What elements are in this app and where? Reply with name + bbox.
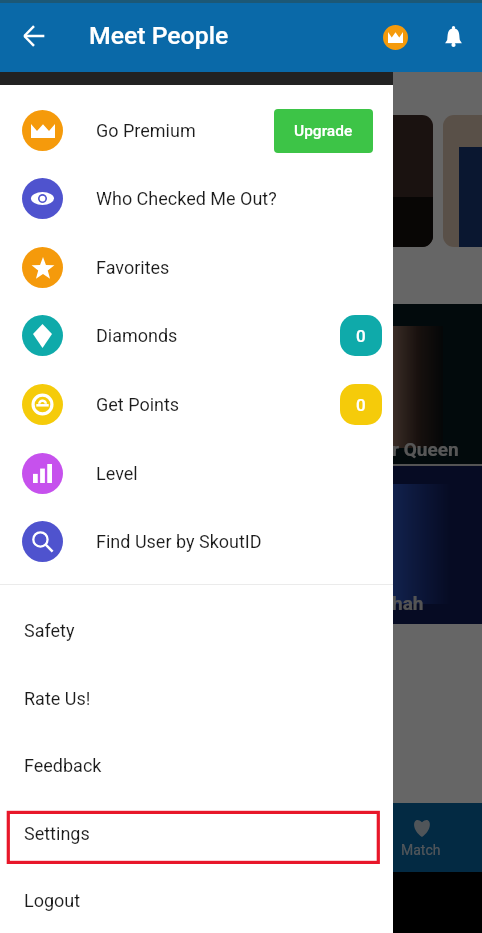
staticText: Diamonds bbox=[96, 325, 178, 346]
staticText: Logout bbox=[24, 890, 81, 911]
button[interactable]: Who Checked Me Out? bbox=[0, 164, 393, 233]
button[interactable]: Rate Us! bbox=[0, 664, 393, 732]
staticText: Level bbox=[96, 463, 138, 484]
staticText: Find User by SkoutID bbox=[96, 531, 262, 552]
button[interactable]: Back bbox=[10, 12, 58, 60]
button[interactable]: Settings bbox=[0, 799, 393, 867]
button[interactable]: Diamonds bbox=[0, 301, 393, 370]
button[interactable]: Upgrade bbox=[274, 109, 373, 153]
staticText: Rate Us! bbox=[24, 688, 91, 709]
button[interactable]: Safety bbox=[0, 596, 393, 664]
staticText: Safety bbox=[24, 620, 75, 641]
staticText: Feedback bbox=[24, 755, 102, 776]
staticText: hah bbox=[392, 592, 424, 614]
staticText: Settings bbox=[24, 823, 90, 844]
staticText: Get Points bbox=[96, 394, 180, 415]
staticText: Favorites bbox=[96, 257, 170, 278]
button[interactable]: Feedback bbox=[0, 731, 393, 799]
button[interactable]: Favorites bbox=[0, 233, 393, 302]
staticText: Go Premium bbox=[96, 120, 196, 141]
button[interactable]: Find User by SkoutID bbox=[0, 507, 393, 576]
staticText: Who Checked Me Out? bbox=[96, 188, 277, 209]
staticText: 0 bbox=[356, 326, 366, 346]
staticText: Meet People bbox=[89, 21, 229, 50]
button[interactable]: 0 bbox=[340, 384, 382, 425]
staticText: r Queen bbox=[392, 438, 459, 460]
button[interactable]: Go Premium bbox=[0, 96, 393, 165]
button[interactable]: Go Premium bbox=[373, 15, 417, 59]
staticText: Match bbox=[401, 842, 441, 858]
button[interactable]: Notifications bbox=[431, 15, 475, 59]
staticText: Upgrade bbox=[294, 122, 353, 140]
button[interactable]: Get Points bbox=[0, 370, 393, 439]
button[interactable]: Logout bbox=[0, 866, 393, 933]
staticText: 0 bbox=[356, 395, 366, 415]
button[interactable]: Level bbox=[0, 439, 393, 508]
button[interactable]: 0 bbox=[340, 315, 382, 356]
